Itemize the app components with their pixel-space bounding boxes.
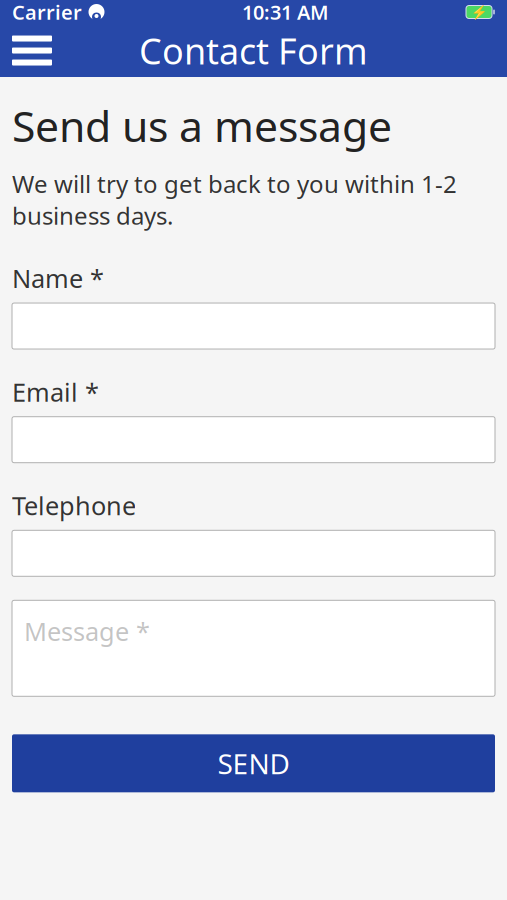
staticText: Message * (24, 614, 150, 648)
button[interactable]: Menu (0, 24, 64, 77)
button[interactable]: SEND (12, 734, 495, 792)
staticText: Telephone (12, 489, 136, 522)
staticText: Name * (12, 261, 104, 295)
staticText: Carrier (12, 0, 82, 25)
staticText: ⚡ (470, 4, 487, 20)
staticText: Send us a message (12, 97, 392, 154)
staticText: Contact Form (139, 27, 368, 74)
staticText: Email * (12, 375, 99, 409)
staticText: SEND (217, 745, 289, 782)
staticText: We will try to get back to you within 1-… (12, 168, 457, 231)
staticText: 10:31 AM (242, 0, 329, 25)
